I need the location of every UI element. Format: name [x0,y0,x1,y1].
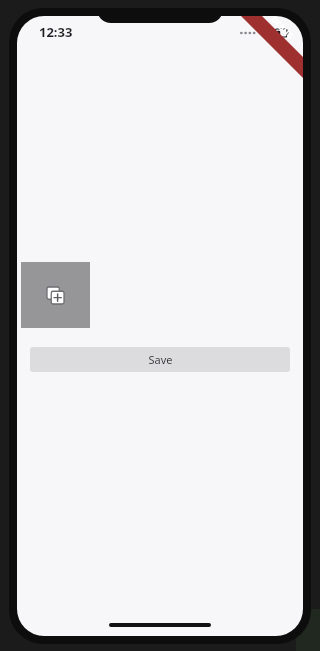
staticText: DEBUG [269,16,297,41]
staticText: Save [148,352,173,367]
staticText: 12:33 [39,23,73,41]
button[interactable]: Save [30,347,290,372]
button[interactable]: Add image [21,262,90,328]
